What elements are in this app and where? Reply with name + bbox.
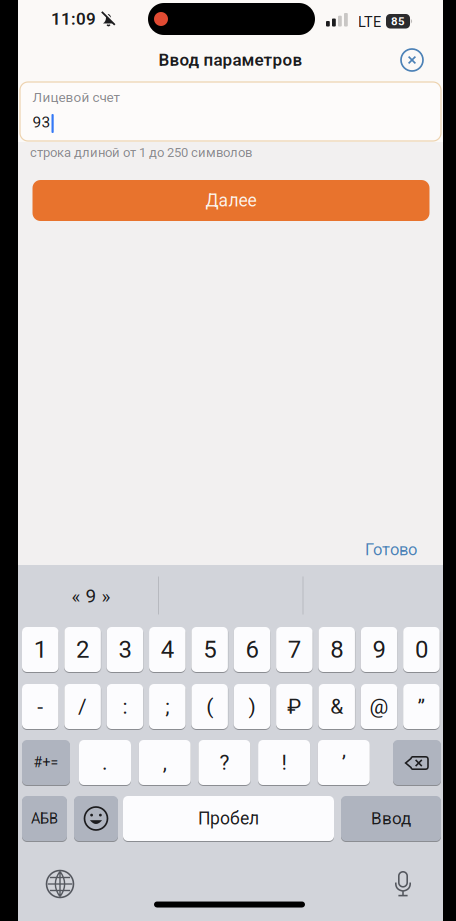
staticText: & (330, 694, 343, 719)
staticText: строка длиной от 1 до 250 символов (30, 145, 252, 160)
staticText: 7 (288, 635, 301, 663)
button[interactable]: « 9 » (22, 576, 160, 616)
button[interactable]: Dictate (383, 864, 423, 904)
staticText: 9 (373, 635, 386, 663)
staticText: 2 (76, 635, 89, 663)
staticText: ) (248, 694, 255, 719)
button[interactable]: 0 (403, 627, 440, 672)
button[interactable]: - (22, 684, 58, 729)
button[interactable]: ’ (318, 740, 370, 785)
button[interactable]: ? (198, 740, 250, 785)
staticText: 8 (330, 635, 343, 663)
button[interactable]: Пробел (123, 796, 334, 841)
button[interactable]: АБВ (22, 796, 67, 841)
button[interactable]: 5 (191, 627, 228, 672)
staticText: АБВ (31, 810, 58, 827)
staticText: 1 (34, 635, 47, 663)
staticText: 6 (245, 635, 258, 663)
button[interactable]: #+= (22, 740, 70, 785)
button[interactable]: 7 (276, 627, 313, 672)
staticText: ? (219, 750, 229, 775)
staticText: #+= (33, 754, 58, 771)
button[interactable]: ! (258, 740, 310, 785)
button[interactable]: 1 (22, 627, 58, 672)
button[interactable]: Emoji (74, 796, 118, 841)
button[interactable]: 9 (361, 627, 397, 672)
button[interactable]: 3 (107, 627, 143, 672)
staticText: / (78, 694, 87, 719)
button[interactable]: ( (191, 684, 228, 729)
staticText: ( (206, 694, 213, 719)
button[interactable]: ; (149, 684, 186, 729)
button[interactable]: 2 (64, 627, 101, 672)
staticText: ” (417, 694, 425, 719)
button[interactable]: & (318, 684, 355, 729)
button[interactable]: ) (234, 684, 270, 729)
button[interactable]: : (107, 684, 143, 729)
button[interactable]: Ввод (341, 796, 441, 841)
staticText: @ (370, 694, 389, 719)
staticText: 85 (391, 14, 405, 28)
button[interactable]: Close (394, 42, 430, 78)
staticText: , (163, 750, 167, 775)
staticText: : (122, 694, 127, 719)
staticText: ₽ (287, 694, 301, 719)
staticText: 3 (118, 635, 131, 663)
button[interactable]: 4 (149, 627, 186, 672)
staticText: Лицевой счет (32, 89, 119, 105)
button[interactable]: Готово (365, 540, 417, 559)
staticText: « 9 » (71, 585, 110, 607)
staticText: 0 (415, 635, 428, 663)
staticText: Пробел (198, 808, 259, 829)
staticText: Готово (365, 540, 417, 559)
staticText: - (37, 694, 43, 719)
staticText: 93 (32, 113, 50, 131)
button[interactable]: @ (361, 684, 397, 729)
button[interactable]: / (64, 684, 101, 729)
staticText: 5 (203, 635, 216, 663)
staticText: ’ (342, 750, 346, 775)
staticText: 11:09 (51, 9, 96, 29)
button[interactable]: ” (403, 684, 440, 729)
staticText: 4 (161, 635, 174, 663)
button[interactable]: 6 (234, 627, 270, 672)
staticText: . (102, 750, 108, 775)
button[interactable]: 8 (318, 627, 355, 672)
staticText: LTE (358, 13, 381, 30)
button[interactable]: , (139, 740, 191, 785)
staticText: ! (282, 750, 287, 775)
staticText: Далее (205, 190, 256, 211)
staticText: ; (165, 694, 169, 719)
staticText: Ввод параметров (158, 50, 302, 70)
button[interactable]: Next keyboard (40, 864, 80, 904)
button[interactable]: Далее (32, 180, 429, 221)
button[interactable]: Delete (393, 740, 441, 785)
button[interactable]: Лицевой счет (20, 82, 441, 141)
button[interactable]: ₽ (276, 684, 313, 729)
staticText: Ввод (371, 808, 411, 828)
button[interactable]: . (79, 740, 131, 785)
